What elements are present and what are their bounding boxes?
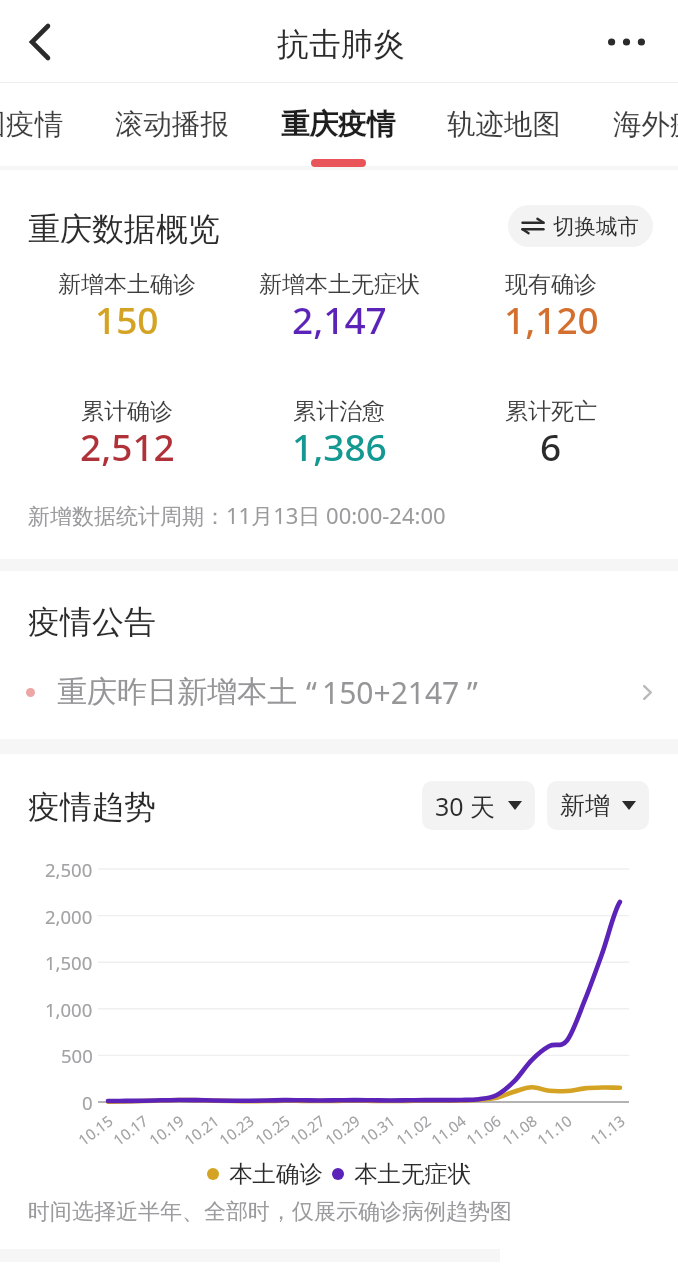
staticText: 疫情公告 (28, 602, 156, 642)
staticText: 新增数据统计周期：11月13日 00:00-24:00 (28, 500, 446, 530)
staticText: 0 (82, 1090, 93, 1115)
button[interactable]: 30 天 (422, 781, 535, 830)
staticText: 重庆疫情 (281, 107, 395, 143)
button[interactable]: 海外疫情 (587, 83, 678, 166)
button[interactable]: 累计确诊 (21, 394, 233, 494)
staticText: 11.08 (498, 1110, 541, 1150)
staticText: 全国疫情 (0, 107, 63, 143)
staticText: 切换城市 (553, 213, 639, 240)
button[interactable]: 全国疫情 (0, 83, 89, 166)
button[interactable]: 切换城市 (508, 205, 653, 247)
staticText: 11.04 (427, 1110, 470, 1150)
button[interactable]: 滚动播报 (89, 83, 255, 166)
staticText: ” (467, 672, 478, 713)
staticText: “ (306, 672, 317, 713)
staticText: 10.23 (215, 1110, 258, 1150)
staticText: 2,000 (45, 904, 93, 929)
staticText: 1,386 (292, 421, 387, 471)
staticText: 2,500 (45, 857, 93, 882)
staticText: 11.13 (586, 1110, 629, 1150)
staticText: 本土确诊 (229, 1159, 323, 1189)
button[interactable]: 新增本土无症状 (233, 267, 445, 367)
staticText: 新增本土无症状 (259, 270, 420, 299)
staticText: 1,000 (45, 997, 93, 1022)
staticText: 抗击肺炎 (277, 24, 405, 64)
staticText: 累计治愈 (293, 397, 385, 426)
button[interactable]: 重庆疫情 (255, 83, 421, 166)
staticText: 时间选择近半年、全部时，仅展示确诊病例趋势图 (28, 1198, 512, 1226)
staticText: 重庆数据概览 (28, 209, 220, 249)
staticText: 10.17 (109, 1110, 152, 1150)
button[interactable]: 累计死亡 (445, 394, 657, 494)
staticText: 轨迹地图 (447, 107, 561, 143)
staticText: 重庆昨日新增本土 (57, 673, 297, 711)
staticText: 滚动播报 (115, 107, 229, 143)
staticText: 现有确诊 (505, 270, 597, 299)
staticText: 累计死亡 (505, 397, 597, 426)
staticText: 11.02 (392, 1110, 435, 1150)
staticText: 新增本土确诊 (58, 270, 196, 299)
staticText: 11.06 (462, 1110, 505, 1150)
staticText: 150+2147 (322, 672, 460, 713)
staticText: 10.19 (145, 1110, 188, 1150)
staticText: 11.10 (533, 1110, 576, 1150)
staticText: 海外疫情 (613, 107, 678, 143)
staticText: 累计确诊 (81, 397, 173, 426)
staticText: 2,512 (80, 421, 175, 471)
button[interactable]: 累计治愈 (233, 394, 445, 494)
button[interactable]: Back (8, 0, 72, 83)
staticText: 10.27 (286, 1110, 329, 1150)
staticText: 10.25 (251, 1110, 294, 1150)
button[interactable]: 现有确诊 (445, 267, 657, 367)
staticText: 10.31 (356, 1110, 399, 1150)
button[interactable]: 重庆昨日新增本土 (0, 663, 678, 721)
staticText: 500 (61, 1043, 93, 1068)
button[interactable]: 轨迹地图 (421, 83, 587, 166)
staticText: 疫情趋势 (28, 787, 156, 827)
button[interactable]: More options (586, 0, 666, 83)
staticText: 10.21 (180, 1110, 223, 1150)
staticText: 1,120 (504, 294, 599, 344)
staticText: 10.29 (321, 1110, 364, 1150)
staticText: 10.15 (74, 1110, 117, 1150)
staticText: 1,500 (45, 950, 93, 975)
staticText: 本土无症状 (354, 1159, 472, 1189)
button[interactable]: 新增 (547, 781, 649, 830)
staticText: 新增 (560, 790, 610, 821)
staticText: 150 (95, 294, 159, 344)
button[interactable]: 新增本土确诊 (21, 267, 233, 367)
staticText: 2,147 (292, 294, 387, 344)
staticText: 30 天 (435, 789, 496, 823)
staticText: 6 (540, 421, 562, 471)
